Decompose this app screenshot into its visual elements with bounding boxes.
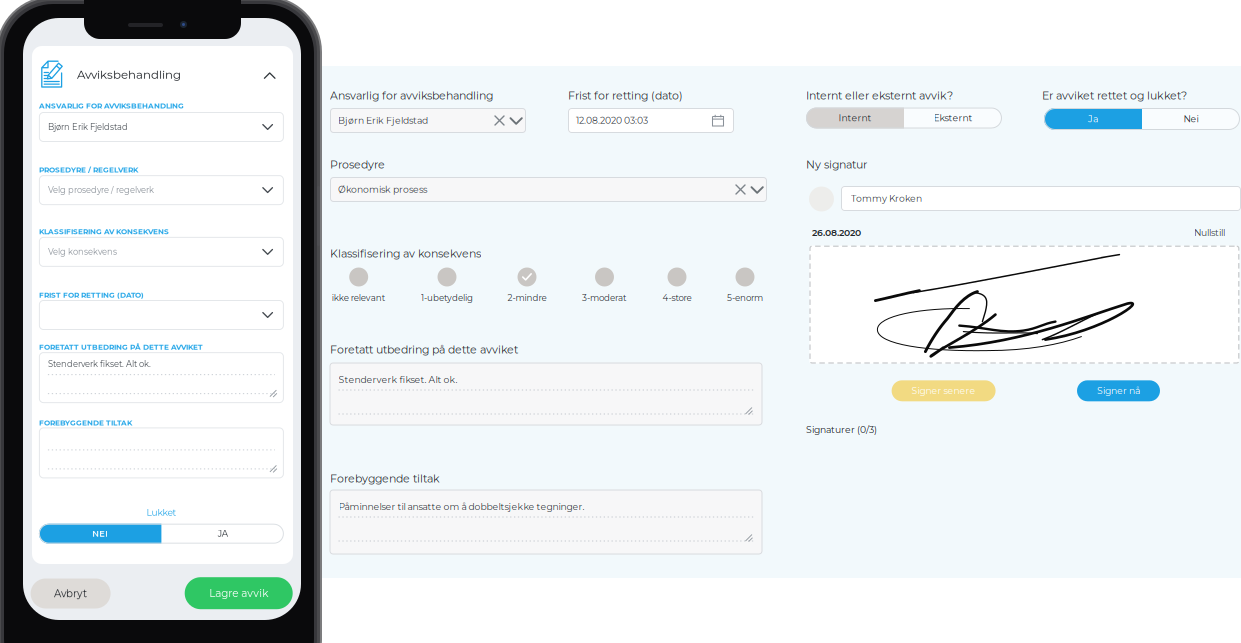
staticText: 12.08.2020 03:03 <box>576 115 648 126</box>
staticText: 26.08.2020 <box>812 227 861 238</box>
staticText: Foretatt utbedring på dette avviket <box>330 343 518 356</box>
staticText: Internt eller eksternt avvik? <box>806 89 953 102</box>
button[interactable]: NEI <box>39 524 161 544</box>
button[interactable]: 3-moderat <box>549 267 659 303</box>
button[interactable]: 5-enorm <box>690 267 800 303</box>
staticText: Ja <box>1088 113 1098 125</box>
staticText: Signaturer (0/3) <box>806 424 877 435</box>
staticText: 1-ubetydelig <box>421 292 473 303</box>
button[interactable]: Internt <box>806 107 904 128</box>
button[interactable]: Nei <box>1142 108 1240 130</box>
staticText: Internt <box>838 112 871 124</box>
button[interactable]: 1-ubetydelig <box>392 267 502 303</box>
staticText: Velg prosedyre / regelverk <box>48 185 154 195</box>
button[interactable]: Collapse section <box>258 64 282 88</box>
staticText: FOREBYGGENDE TILTAK <box>39 418 132 427</box>
staticText: Nei <box>1183 113 1198 125</box>
button[interactable]: Ja <box>1044 108 1142 130</box>
staticText: Bjørn Erik Fjeldstad <box>48 122 128 132</box>
staticText: Klassifisering av konsekvens <box>330 247 481 260</box>
staticText: ikke relevant <box>332 292 386 303</box>
staticText: Avviksbehandling <box>77 67 181 82</box>
staticText: Frist for retting (dato) <box>568 89 683 102</box>
staticText: Avbryt <box>54 587 87 600</box>
button[interactable]: Bjørn Erik Fjeldstad <box>39 112 284 142</box>
staticText: Ansvarlig for avviksbehandling <box>330 89 493 102</box>
button[interactable]: Signer senere <box>892 380 996 401</box>
staticText: 5-enorm <box>727 292 763 303</box>
button[interactable]: ikke relevant <box>304 267 414 303</box>
staticText: Tommy Kroken <box>851 193 922 204</box>
staticText: Bjørn Erik Fjeldstad <box>338 115 428 126</box>
button[interactable]: Bjørn Erik Fjeldstad <box>330 108 526 133</box>
button[interactable]: 12.08.2020 03:03 <box>568 108 734 133</box>
staticText: Prosedyre <box>330 158 385 171</box>
button[interactable]: Signer nå <box>1077 380 1160 401</box>
staticText: Velg konsekvens <box>48 247 117 257</box>
staticText: Økonomisk prosess <box>338 184 427 195</box>
staticText: ANSVARLIG FOR AVVIKSBEHANDLING <box>39 101 184 110</box>
button[interactable]: Velg konsekvens <box>39 237 284 267</box>
staticText: 2-mindre <box>507 292 546 303</box>
staticText: Påminnelser til ansatte om å dobbeltsjek… <box>338 501 584 512</box>
button[interactable]: Økonomisk prosess <box>330 177 767 202</box>
staticText: KLASSIFISERING AV KONSEKVENS <box>39 227 169 236</box>
button[interactable]: Avbryt <box>31 578 111 608</box>
button[interactable]: 2-mindre <box>472 267 582 303</box>
staticText: Er avviket rettet og lukket? <box>1042 89 1187 102</box>
staticText: FRIST FOR RETTING (DATO) <box>39 291 144 300</box>
staticText: 3-moderat <box>582 292 627 303</box>
button[interactable] <box>39 300 284 330</box>
button[interactable]: Eksternt <box>904 107 1002 128</box>
staticText: Stenderverk fikset. Alt ok. <box>338 374 457 385</box>
staticText: Stenderverk fikset. Alt ok. <box>48 359 151 369</box>
button[interactable]: Velg prosedyre / regelverk <box>39 175 284 205</box>
staticText: Signer senere <box>912 385 976 396</box>
staticText: PROSEDYRE / REGELVERK <box>39 165 138 174</box>
button[interactable]: 4-store <box>622 267 732 303</box>
staticText: Lukket <box>146 507 176 518</box>
staticText: JA <box>218 528 228 539</box>
staticText: Lagre avvik <box>209 587 268 600</box>
staticText: NEI <box>92 529 108 539</box>
staticText: Signer nå <box>1097 385 1140 396</box>
button[interactable]: JA <box>161 524 284 544</box>
staticText: FORETATT UTBEDRING PÅ DETTE AVVIKET <box>39 343 203 352</box>
button[interactable]: Nullstill <box>1194 227 1225 238</box>
staticText: 4-store <box>662 292 691 303</box>
staticText: Ny signatur <box>806 158 867 171</box>
staticText: Eksternt <box>933 112 972 124</box>
staticText: Nullstill <box>1194 227 1225 238</box>
button[interactable]: Lagre avvik <box>185 577 293 609</box>
staticText: Forebyggende tiltak <box>330 472 440 485</box>
